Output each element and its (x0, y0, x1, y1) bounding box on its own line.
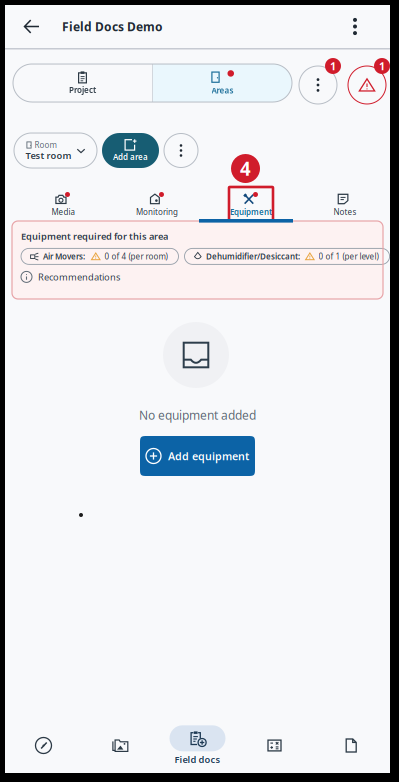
button[interactable]: Notes (315, 187, 375, 221)
button[interactable]: Project (13, 64, 152, 102)
button[interactable]: Room (14, 133, 97, 168)
button[interactable]: Dashboard (5, 718, 82, 773)
staticText: Media (51, 207, 74, 217)
staticText: No equipment added (139, 407, 256, 423)
button[interactable]: Media (33, 187, 93, 221)
staticText: Air Movers: (43, 251, 85, 262)
button[interactable]: Areas (153, 64, 292, 102)
staticText: Equipment required for this area (21, 230, 168, 242)
staticText: Monitoring (136, 207, 178, 217)
staticText: Recommendations (38, 271, 120, 283)
staticText: 1 (330, 59, 336, 73)
staticText: Dehumidifier/Desiccant: (206, 251, 300, 262)
staticText: 0 of 1 (per level) (319, 251, 379, 262)
staticText: Field docs (174, 753, 220, 766)
staticText: Add area (113, 152, 148, 162)
staticText: Room (34, 140, 56, 150)
button[interactable]: Recommendations (21, 270, 374, 283)
staticText: Add equipment (168, 449, 249, 463)
button[interactable]: Add equipment (140, 436, 255, 476)
button[interactable]: Calculations (236, 718, 313, 773)
staticText: 1 (379, 59, 385, 73)
button[interactable]: Equipment (229, 187, 273, 221)
staticText: 0 of 4 (per room) (104, 251, 167, 262)
button[interactable]: Back (12, 5, 52, 48)
button[interactable]: Documents (313, 718, 390, 773)
button[interactable]: More options (335, 5, 375, 48)
staticText: Test room (25, 149, 71, 162)
button[interactable]: Area options (164, 133, 198, 167)
button[interactable]: Add area (102, 133, 159, 168)
button[interactable]: Monitoring (127, 187, 187, 221)
staticText: Equipment (230, 207, 272, 217)
button[interactable]: More actions (299, 56, 341, 104)
button[interactable]: Photos (82, 718, 159, 773)
staticText: Notes (333, 207, 356, 217)
button[interactable]: Field docs (159, 718, 236, 773)
staticText: 4 (240, 156, 251, 181)
staticText: Field Docs Demo (62, 18, 163, 34)
staticText: Project (69, 85, 96, 95)
staticText: Areas (211, 85, 233, 96)
button[interactable]: Warnings (348, 56, 390, 104)
